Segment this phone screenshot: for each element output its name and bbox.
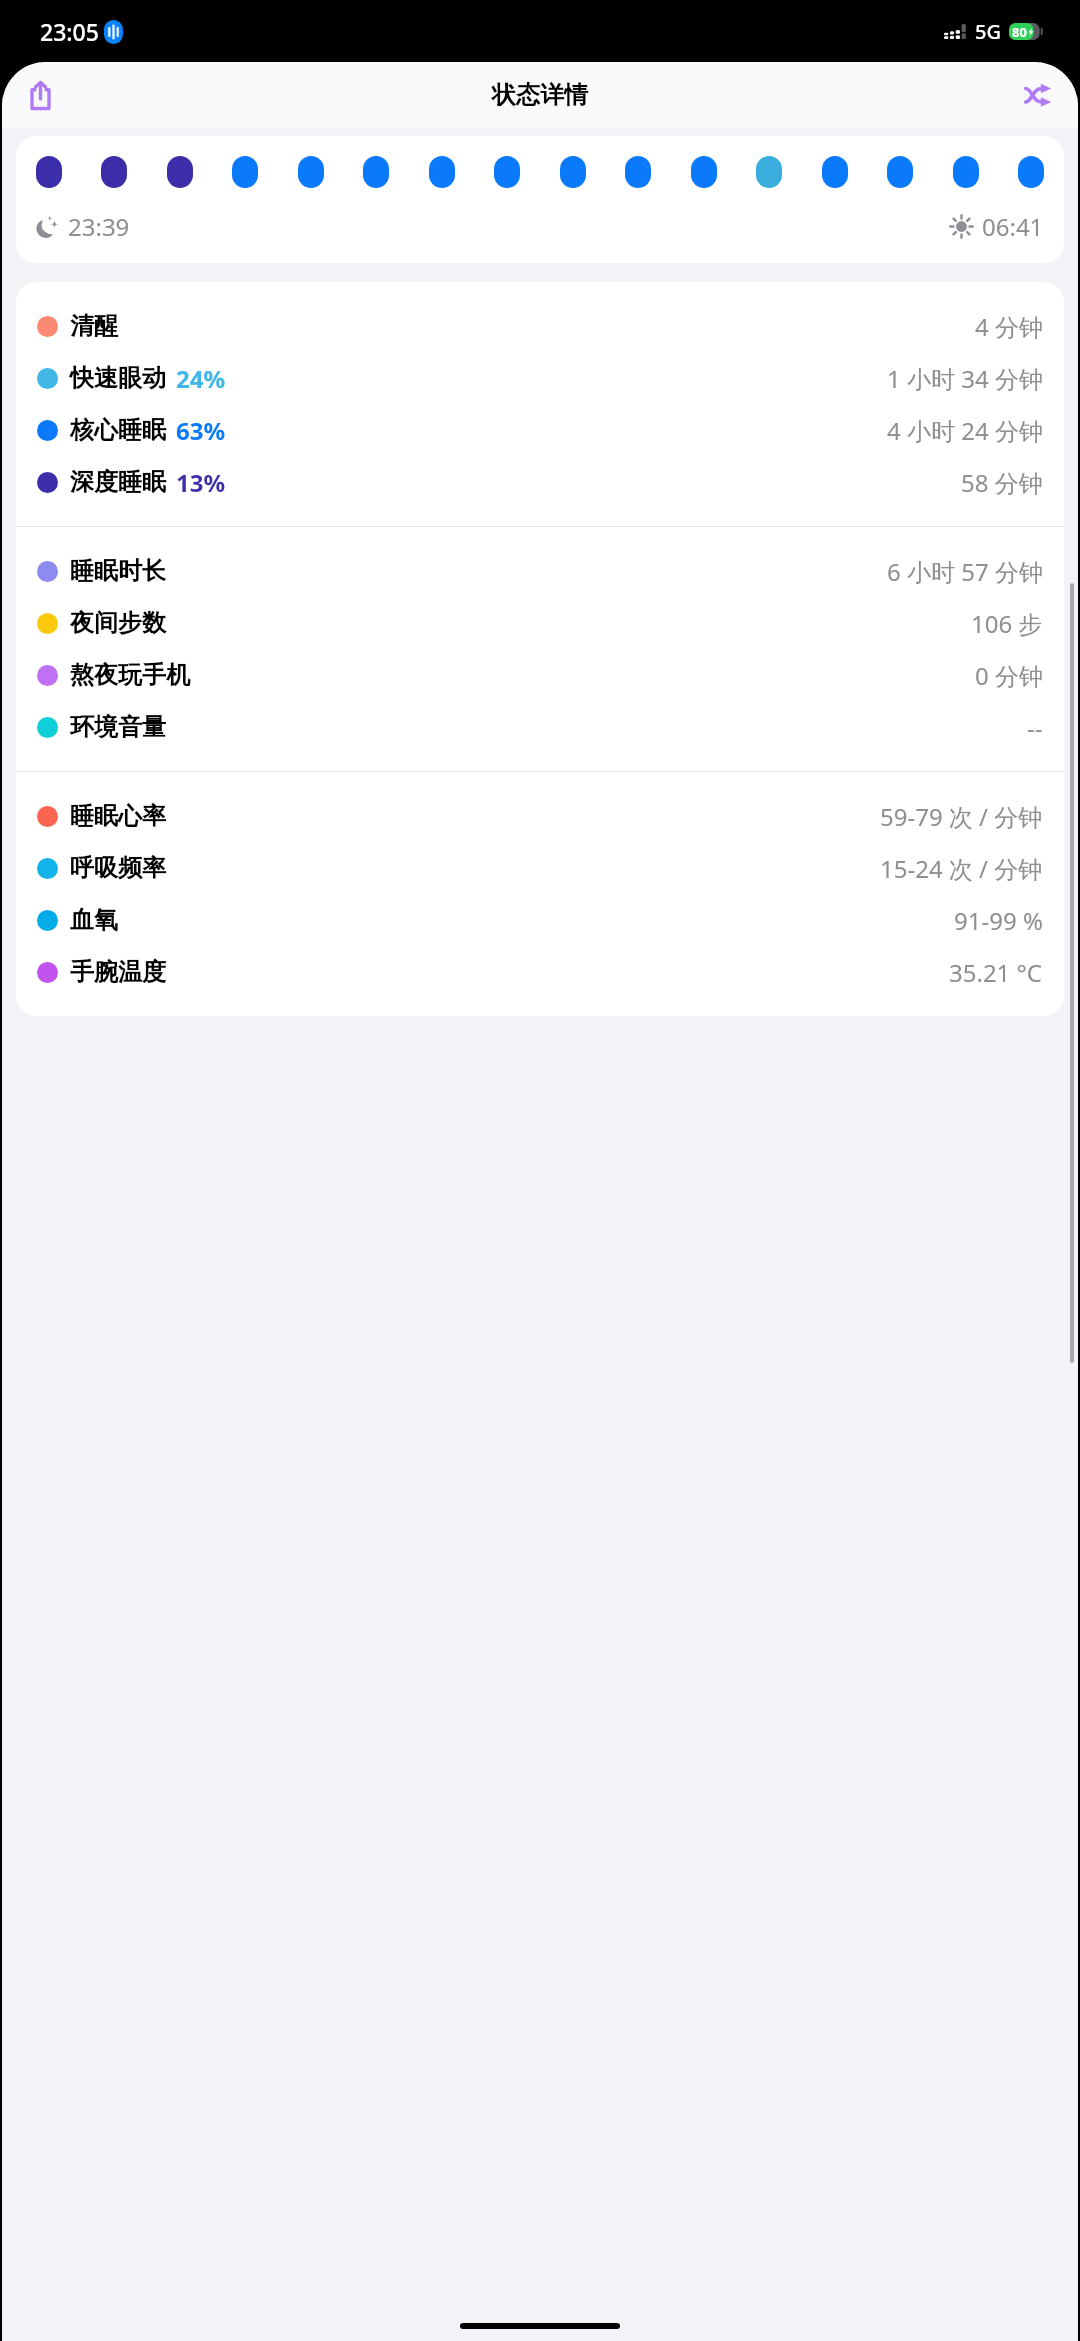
staticText: 4 小时 24 分钟 (887, 414, 1043, 447)
staticText: 清醒 (70, 311, 118, 341)
staticText: 1 小时 34 分钟 (887, 362, 1043, 395)
staticText: 血氧 (70, 905, 118, 935)
button[interactable]: 清醒 (16, 300, 1064, 352)
button[interactable]: 呼吸频率 (16, 842, 1064, 894)
staticText: 熬夜玩手机 (70, 660, 190, 690)
staticText: 5G (975, 18, 1001, 45)
staticText: 63% (176, 414, 226, 447)
staticText: 80 (1012, 23, 1027, 40)
staticText: 35.21 °C (949, 956, 1043, 989)
button[interactable]: 熬夜玩手机 (16, 649, 1064, 701)
button[interactable]: 环境音量 (16, 701, 1064, 753)
staticText: 0 分钟 (975, 659, 1043, 692)
staticText: 状态详情 (492, 80, 588, 110)
staticText: 呼吸频率 (70, 853, 166, 883)
staticText: 6 小时 57 分钟 (887, 555, 1043, 588)
staticText: 夜间步数 (70, 608, 166, 638)
staticText: 睡眠心率 (70, 801, 166, 831)
staticText: 手腕温度 (70, 957, 166, 987)
button[interactable]: 夜间步数 (16, 597, 1064, 649)
staticText: 4 分钟 (975, 310, 1043, 343)
staticText: 15-24 次 / 分钟 (880, 852, 1043, 885)
staticText: 24% (176, 362, 226, 395)
staticText: 睡眠时长 (70, 556, 166, 586)
staticText: 快速眼动 (70, 363, 166, 393)
staticText: 58 分钟 (961, 466, 1043, 499)
staticText: 91-99 % (954, 904, 1043, 937)
staticText: 深度睡眠 (70, 467, 166, 497)
staticText: 106 步 (971, 607, 1043, 640)
staticText: 23:39 (68, 210, 130, 243)
button[interactable]: Share (18, 73, 62, 117)
button[interactable]: 睡眠心率 (16, 790, 1064, 842)
button[interactable]: Shuffle (1016, 73, 1060, 117)
staticText: 核心睡眠 (70, 415, 166, 445)
button[interactable]: 快速眼动 (16, 352, 1064, 404)
staticText: 59-79 次 / 分钟 (880, 800, 1043, 833)
button[interactable]: 核心睡眠 (16, 404, 1064, 456)
button[interactable]: 深度睡眠 (16, 456, 1064, 508)
staticText: 环境音量 (70, 712, 166, 742)
button[interactable]: 手腕温度 (16, 946, 1064, 998)
staticText: -- (1027, 711, 1043, 744)
button[interactable]: 睡眠时长 (16, 545, 1064, 597)
button[interactable]: 血氧 (16, 894, 1064, 946)
staticText: 23:05 (40, 16, 99, 47)
staticText: 06:41 (982, 210, 1044, 243)
staticText: 13% (176, 466, 226, 499)
